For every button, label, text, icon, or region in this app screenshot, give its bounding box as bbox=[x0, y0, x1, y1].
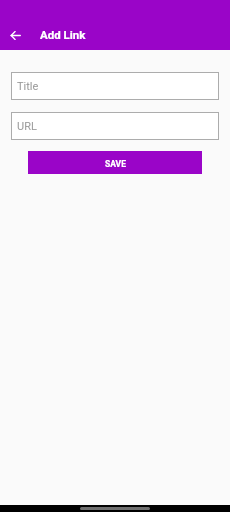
button[interactable]: URL bbox=[11, 112, 219, 140]
staticText: Title bbox=[17, 80, 39, 93]
button[interactable]: Back bbox=[5, 24, 27, 46]
staticText: URL bbox=[17, 120, 37, 133]
staticText: SAVE bbox=[105, 159, 126, 169]
staticText: Add Link bbox=[40, 28, 86, 41]
button[interactable]: SAVE bbox=[28, 151, 202, 174]
button[interactable]: Title bbox=[11, 72, 219, 100]
